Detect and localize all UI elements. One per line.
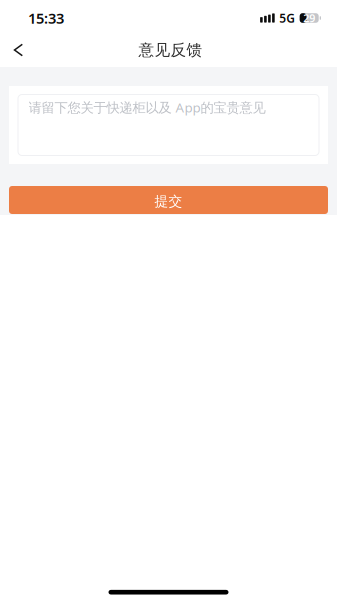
- staticText: 提交: [154, 193, 182, 210]
- button[interactable]: 提交: [9, 186, 328, 214]
- staticText: 5G: [279, 10, 295, 26]
- button[interactable]: Back: [0, 33, 37, 67]
- button[interactable]: 请留下您关于快递柜以及 App的宝贵意见: [18, 94, 319, 155]
- staticText: 29: [303, 11, 315, 25]
- staticText: 意见反馈: [138, 40, 202, 60]
- staticText: 15:33: [28, 8, 64, 28]
- staticText: 请留下您关于快递柜以及 App的宝贵意见: [28, 98, 265, 116]
